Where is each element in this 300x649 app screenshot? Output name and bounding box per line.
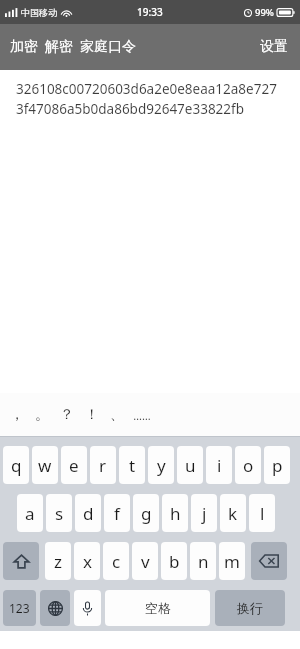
button[interactable]: l <box>249 494 275 532</box>
staticText: d <box>83 502 94 525</box>
staticText: j <box>202 502 207 525</box>
staticText: 3f47086a5b0da86bd92647e33822fb <box>16 100 245 118</box>
button[interactable]: j <box>191 494 217 532</box>
button[interactable]: u <box>177 446 203 484</box>
button[interactable]: Voice input <box>74 590 101 626</box>
button[interactable]: 空格 <box>105 590 210 626</box>
button[interactable]: i <box>206 446 232 484</box>
staticText: 中国移动 <box>21 7 57 18</box>
staticText: 326108c00720603d6a2e0e8eaa12a8e727 <box>16 80 277 98</box>
button[interactable]: 。 <box>29 395 54 435</box>
button[interactable]: h <box>162 494 188 532</box>
button[interactable]: x <box>74 542 100 580</box>
staticText: r <box>99 454 107 477</box>
staticText: 123 <box>9 600 30 616</box>
staticText: v <box>141 550 150 573</box>
button[interactable]: 解密 <box>45 30 73 64</box>
staticText: u <box>185 454 196 477</box>
button[interactable]: Switch language <box>40 590 70 626</box>
staticText: …… <box>133 408 151 423</box>
staticText: 99% <box>255 6 274 19</box>
staticText: w <box>38 454 52 477</box>
staticText: a <box>25 502 35 525</box>
staticText: 解密 <box>45 38 73 56</box>
button[interactable]: ？ <box>54 395 79 435</box>
staticText: 空格 <box>145 600 171 616</box>
staticText: e <box>69 454 79 477</box>
button[interactable]: Backspace <box>251 542 287 580</box>
button[interactable]: b <box>161 542 187 580</box>
staticText: q <box>11 454 22 477</box>
button[interactable]: s <box>46 494 72 532</box>
button[interactable]: …… <box>129 395 154 435</box>
staticText: 加密 <box>10 38 38 56</box>
staticText: c <box>112 550 121 573</box>
button[interactable]: ， <box>4 395 29 435</box>
staticText: ， <box>10 406 24 424</box>
staticText: b <box>169 550 180 573</box>
button[interactable]: t <box>119 446 145 484</box>
button[interactable]: e <box>61 446 87 484</box>
staticText: ？ <box>60 406 74 424</box>
staticText: g <box>141 502 152 525</box>
staticText: f <box>114 502 120 525</box>
staticText: 、 <box>110 406 124 424</box>
button[interactable]: 设置 <box>248 30 300 64</box>
staticText: l <box>260 502 265 525</box>
button[interactable]: ！ <box>79 395 104 435</box>
button[interactable]: v <box>132 542 158 580</box>
staticText: y <box>157 454 166 477</box>
button[interactable]: y <box>148 446 174 484</box>
button[interactable]: m <box>219 542 245 580</box>
button[interactable]: c <box>103 542 129 580</box>
button[interactable]: o <box>235 446 261 484</box>
button[interactable]: 加密 <box>10 30 38 64</box>
button[interactable]: n <box>190 542 216 580</box>
staticText: o <box>243 454 254 477</box>
staticText: n <box>198 550 209 573</box>
staticText: x <box>83 550 92 573</box>
button[interactable]: p <box>264 446 290 484</box>
button[interactable]: 家庭口令 <box>80 30 136 64</box>
button[interactable]: w <box>32 446 58 484</box>
button[interactable]: z <box>45 542 71 580</box>
staticText: p <box>272 454 283 477</box>
button[interactable]: q <box>3 446 29 484</box>
staticText: h <box>170 502 181 525</box>
staticText: 家庭口令 <box>80 38 136 56</box>
button[interactable]: 123 <box>3 590 36 626</box>
staticText: ！ <box>85 406 99 424</box>
button[interactable]: Shift <box>3 542 39 580</box>
staticText: k <box>228 502 238 525</box>
button[interactable]: r <box>90 446 116 484</box>
staticText: 19:33 <box>137 5 163 19</box>
button[interactable]: a <box>17 494 43 532</box>
staticText: m <box>224 550 240 573</box>
staticText: z <box>54 550 62 573</box>
button[interactable]: f <box>104 494 130 532</box>
button[interactable]: k <box>220 494 246 532</box>
staticText: 换行 <box>237 600 263 616</box>
button[interactable]: d <box>75 494 101 532</box>
button[interactable]: g <box>133 494 159 532</box>
staticText: i <box>217 454 222 477</box>
button[interactable]: 、 <box>104 395 129 435</box>
button[interactable]: 换行 <box>215 590 285 626</box>
staticText: 设置 <box>260 38 288 56</box>
staticText: s <box>55 502 64 525</box>
staticText: t <box>129 454 136 477</box>
staticText: 。 <box>35 406 49 424</box>
